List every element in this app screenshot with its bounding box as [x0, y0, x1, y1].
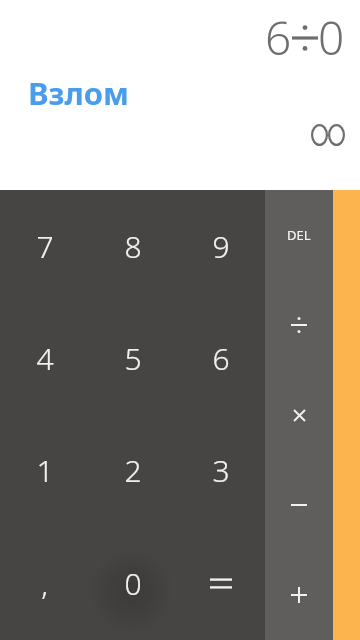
button[interactable]: 2 [89, 414, 177, 527]
button[interactable]: Взлом [28, 72, 129, 114]
button[interactable]: 4 [0, 302, 89, 414]
staticText: 3 [212, 450, 230, 491]
button[interactable]: Plus [265, 550, 333, 640]
staticText: 4 [36, 338, 54, 379]
button[interactable]: Equals [177, 527, 265, 640]
button[interactable]: DEL [265, 190, 333, 280]
button[interactable]: 9 [177, 190, 265, 302]
staticText: 6 [265, 6, 292, 69]
button[interactable]: 5 [89, 302, 177, 414]
staticText: 6 [212, 338, 230, 379]
staticText: 8 [124, 226, 142, 267]
button[interactable]: 0 [89, 527, 177, 640]
staticText: 7 [36, 226, 54, 267]
staticText: , [41, 563, 48, 604]
staticText: DEL [287, 226, 311, 244]
button[interactable]: Divide [265, 280, 333, 370]
button[interactable]: Minus [265, 460, 333, 550]
staticText: 9 [212, 226, 230, 267]
staticText: 5 [124, 338, 142, 379]
button[interactable]: 6 [177, 302, 265, 414]
button[interactable]: 7 [0, 190, 89, 302]
staticText: 0 [124, 563, 142, 604]
staticText: 2 [124, 450, 142, 491]
button[interactable]: , [0, 527, 89, 640]
staticText: 0 [318, 6, 345, 69]
button[interactable]: Multiply [265, 370, 333, 460]
staticText: 1 [36, 450, 54, 491]
button[interactable]: 8 [89, 190, 177, 302]
button[interactable]: 1 [0, 414, 89, 527]
staticText: Взлом [28, 72, 129, 114]
button[interactable]: 3 [177, 414, 265, 527]
